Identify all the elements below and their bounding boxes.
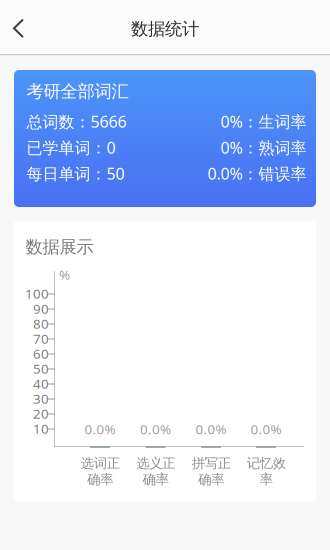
staticText: 数据统计 — [131, 18, 199, 40]
staticText: 100 — [25, 285, 49, 302]
staticText: 0.0% — [250, 420, 281, 438]
staticText: 40 — [33, 375, 49, 392]
staticText: 选词正 确率 — [80, 455, 119, 488]
staticText: 0.0%：错误率 — [207, 163, 306, 184]
staticText: 90 — [33, 300, 49, 317]
staticText: 记忆效 率 — [246, 455, 285, 488]
staticText: 数据展示 — [25, 236, 93, 258]
staticText: 总词数：5666 — [26, 111, 126, 132]
staticText: 选义正 确率 — [136, 455, 175, 488]
staticText: 30 — [33, 390, 49, 407]
staticText: 80 — [33, 315, 49, 332]
staticText: 已学单词：0 — [26, 137, 115, 158]
staticText: 0.0% — [140, 420, 171, 438]
staticText: 0.0% — [84, 420, 115, 438]
staticText: 0%：生词率 — [220, 111, 306, 132]
staticText: 拼写正 确率 — [191, 455, 230, 488]
staticText: 0.0% — [195, 420, 226, 438]
staticText: 考研全部词汇 — [26, 81, 128, 102]
staticText: 60 — [33, 345, 49, 362]
staticText: 70 — [33, 330, 49, 347]
staticText: 0%：熟词率 — [220, 137, 306, 158]
staticText: % — [59, 266, 70, 283]
staticText: 10 — [33, 420, 49, 437]
staticText: 50 — [33, 360, 49, 377]
staticText: 每日单词：50 — [26, 163, 124, 184]
staticText: 20 — [33, 405, 49, 422]
button[interactable]: Back — [0, 4, 51, 52]
